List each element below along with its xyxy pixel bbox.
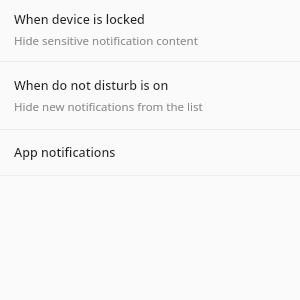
staticText: App notifications: [14, 144, 116, 161]
staticText: When do not disturb is on: [14, 77, 169, 94]
button[interactable]: When device is locked: [0, 0, 300, 61]
button[interactable]: App notifications: [0, 130, 300, 175]
staticText: Hide new notifications from the list: [14, 99, 203, 115]
staticText: Hide sensitive notification content: [14, 33, 198, 49]
staticText: When device is locked: [14, 11, 145, 28]
button[interactable]: When do not disturb is on: [0, 62, 300, 129]
